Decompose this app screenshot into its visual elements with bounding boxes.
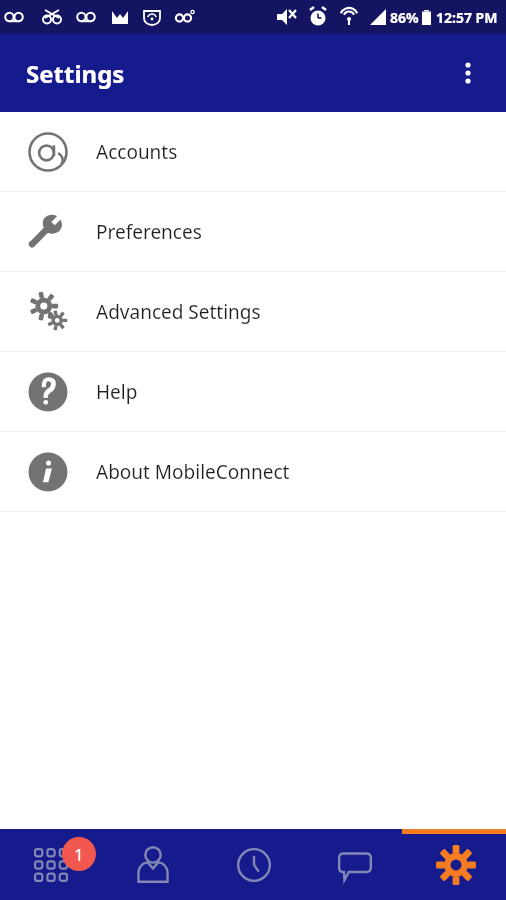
staticText: Settings xyxy=(26,57,125,90)
staticText: 1 xyxy=(74,843,84,866)
button[interactable]: Apps xyxy=(0,829,102,900)
button[interactable]: About MobileConnect xyxy=(0,432,506,511)
staticText: About MobileConnect xyxy=(96,459,290,485)
button[interactable]: History xyxy=(203,829,304,900)
button[interactable]: Settings xyxy=(405,829,506,900)
button[interactable]: Preferences xyxy=(0,192,506,271)
staticText: Help xyxy=(96,379,138,405)
button[interactable]: Help xyxy=(0,352,506,431)
button[interactable]: Accounts xyxy=(0,112,506,191)
button[interactable]: Messages xyxy=(304,829,405,900)
staticText: Preferences xyxy=(96,219,202,245)
staticText: 12:57 PM xyxy=(436,8,498,27)
staticText: Advanced Settings xyxy=(96,299,261,325)
staticText: Accounts xyxy=(96,139,178,165)
staticText: 86% xyxy=(390,8,419,27)
button[interactable]: More options xyxy=(444,49,492,97)
button[interactable]: Contacts xyxy=(102,829,203,900)
button[interactable]: Advanced Settings xyxy=(0,272,506,351)
